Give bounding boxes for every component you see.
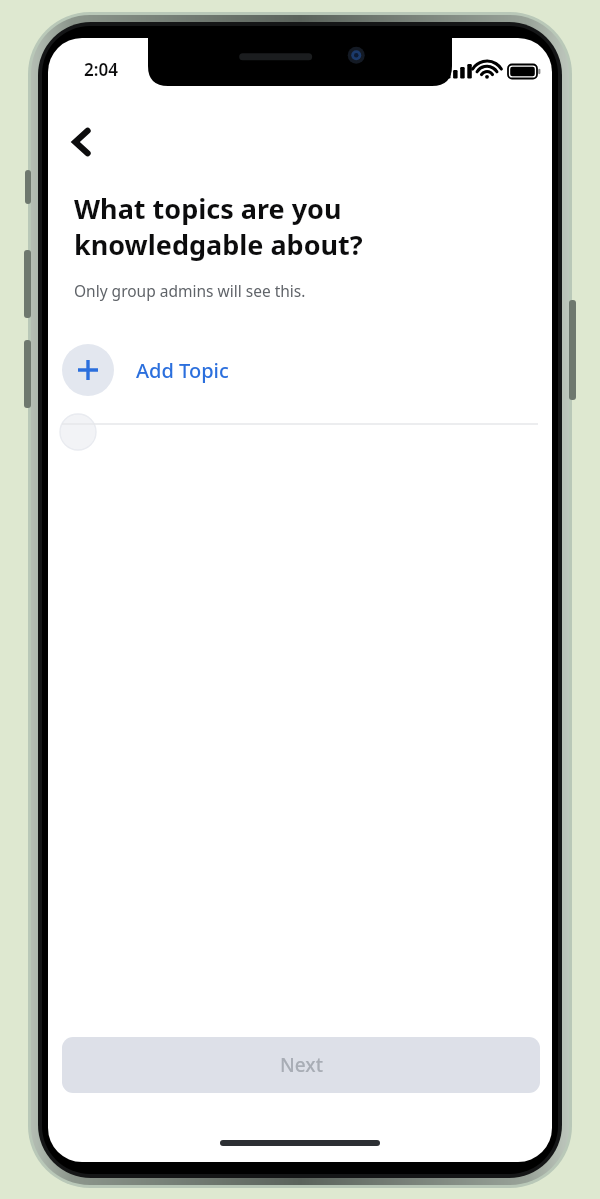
staticText: What topics are you knowledgable about? xyxy=(74,190,363,263)
staticText: Add Topic xyxy=(136,357,229,384)
staticText: Only group admins will see this. xyxy=(74,280,306,301)
staticText: Next xyxy=(280,1052,323,1078)
staticText: 2:04 xyxy=(84,58,118,81)
button[interactable]: Next xyxy=(62,1037,540,1093)
button[interactable]: Add Topic xyxy=(62,338,322,402)
button[interactable]: Back xyxy=(54,114,110,170)
